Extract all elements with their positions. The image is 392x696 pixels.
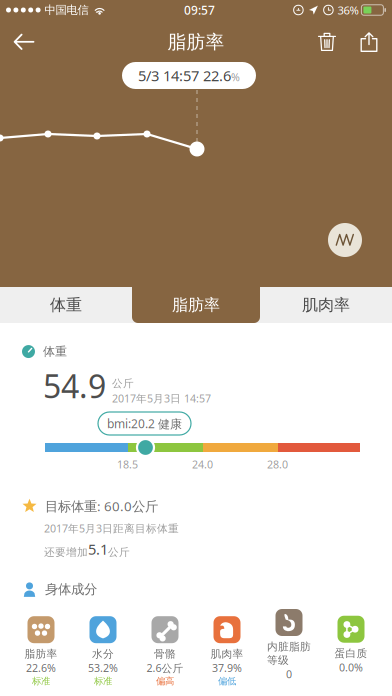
staticText: 水分 (92, 647, 114, 661)
button[interactable]: Delete (306, 20, 348, 64)
staticText: % (231, 70, 240, 84)
button[interactable]: 蛋白质 (320, 616, 382, 687)
staticText: 体重 (50, 295, 82, 315)
staticText: 22.6% (26, 661, 56, 675)
staticText: 偏高 (156, 675, 174, 687)
staticText: 0.0% (339, 660, 363, 675)
button[interactable]: 肌肉率 (260, 287, 392, 323)
staticText: 公斤 (112, 377, 134, 390)
button[interactable]: 内脏脂肪等级 (258, 609, 320, 694)
staticText: 蛋白质 (334, 647, 367, 660)
staticText: 内脏脂肪等级 (267, 640, 311, 667)
staticText: 2.6公斤 (146, 661, 183, 675)
staticText: 肌肉率 (302, 295, 350, 315)
staticText: 目标体重: 60.0公斤 (45, 497, 158, 515)
staticText: 骨骼 (154, 647, 176, 661)
staticText: 24.0 (192, 457, 213, 471)
button[interactable]: 水分 (72, 616, 134, 687)
staticText: 2017年5月3日 14:57 (112, 391, 211, 406)
staticText: 0 (286, 667, 292, 681)
staticText: 脂肪率 (172, 295, 220, 315)
staticText: 37.9% (212, 661, 242, 675)
staticText: 脂肪率 (24, 647, 57, 661)
button[interactable]: Share (348, 20, 390, 64)
staticText: 28.0 (267, 457, 288, 471)
staticText: 54.9 (43, 364, 106, 408)
button[interactable]: 体重 (0, 287, 132, 323)
staticText: 2017年5月3日距离目标体重 (44, 521, 179, 535)
button[interactable]: 骨骼 (134, 616, 196, 687)
staticText: 身体成分 (45, 581, 97, 598)
staticText: 5.1 (88, 539, 108, 559)
staticText: 标准 (94, 675, 112, 687)
staticText: 09:57 (184, 2, 215, 18)
button[interactable]: 肌肉率 (196, 616, 258, 687)
staticText: 脂肪率 (167, 30, 224, 54)
staticText: 中国电信 (45, 3, 89, 17)
staticText: bmi:20.2 健康 (107, 415, 182, 432)
staticText: 还要增加 (44, 545, 88, 559)
staticText: 5/3 14:57 22.6 (138, 65, 231, 85)
staticText: 53.2% (88, 661, 118, 675)
staticText: 18.5 (117, 457, 138, 471)
button[interactable]: 脂肪率 (10, 616, 72, 687)
button[interactable]: Back (2, 20, 46, 64)
staticText: 体重 (43, 344, 67, 359)
staticText: 偏低 (218, 675, 236, 687)
button[interactable]: 脂肪率 (132, 287, 260, 323)
button[interactable]: Chart style (328, 223, 362, 257)
staticText: 公斤 (108, 545, 130, 559)
staticText: 标准 (32, 675, 50, 687)
staticText: 36% (337, 2, 358, 18)
staticText: 肌肉率 (210, 647, 243, 661)
